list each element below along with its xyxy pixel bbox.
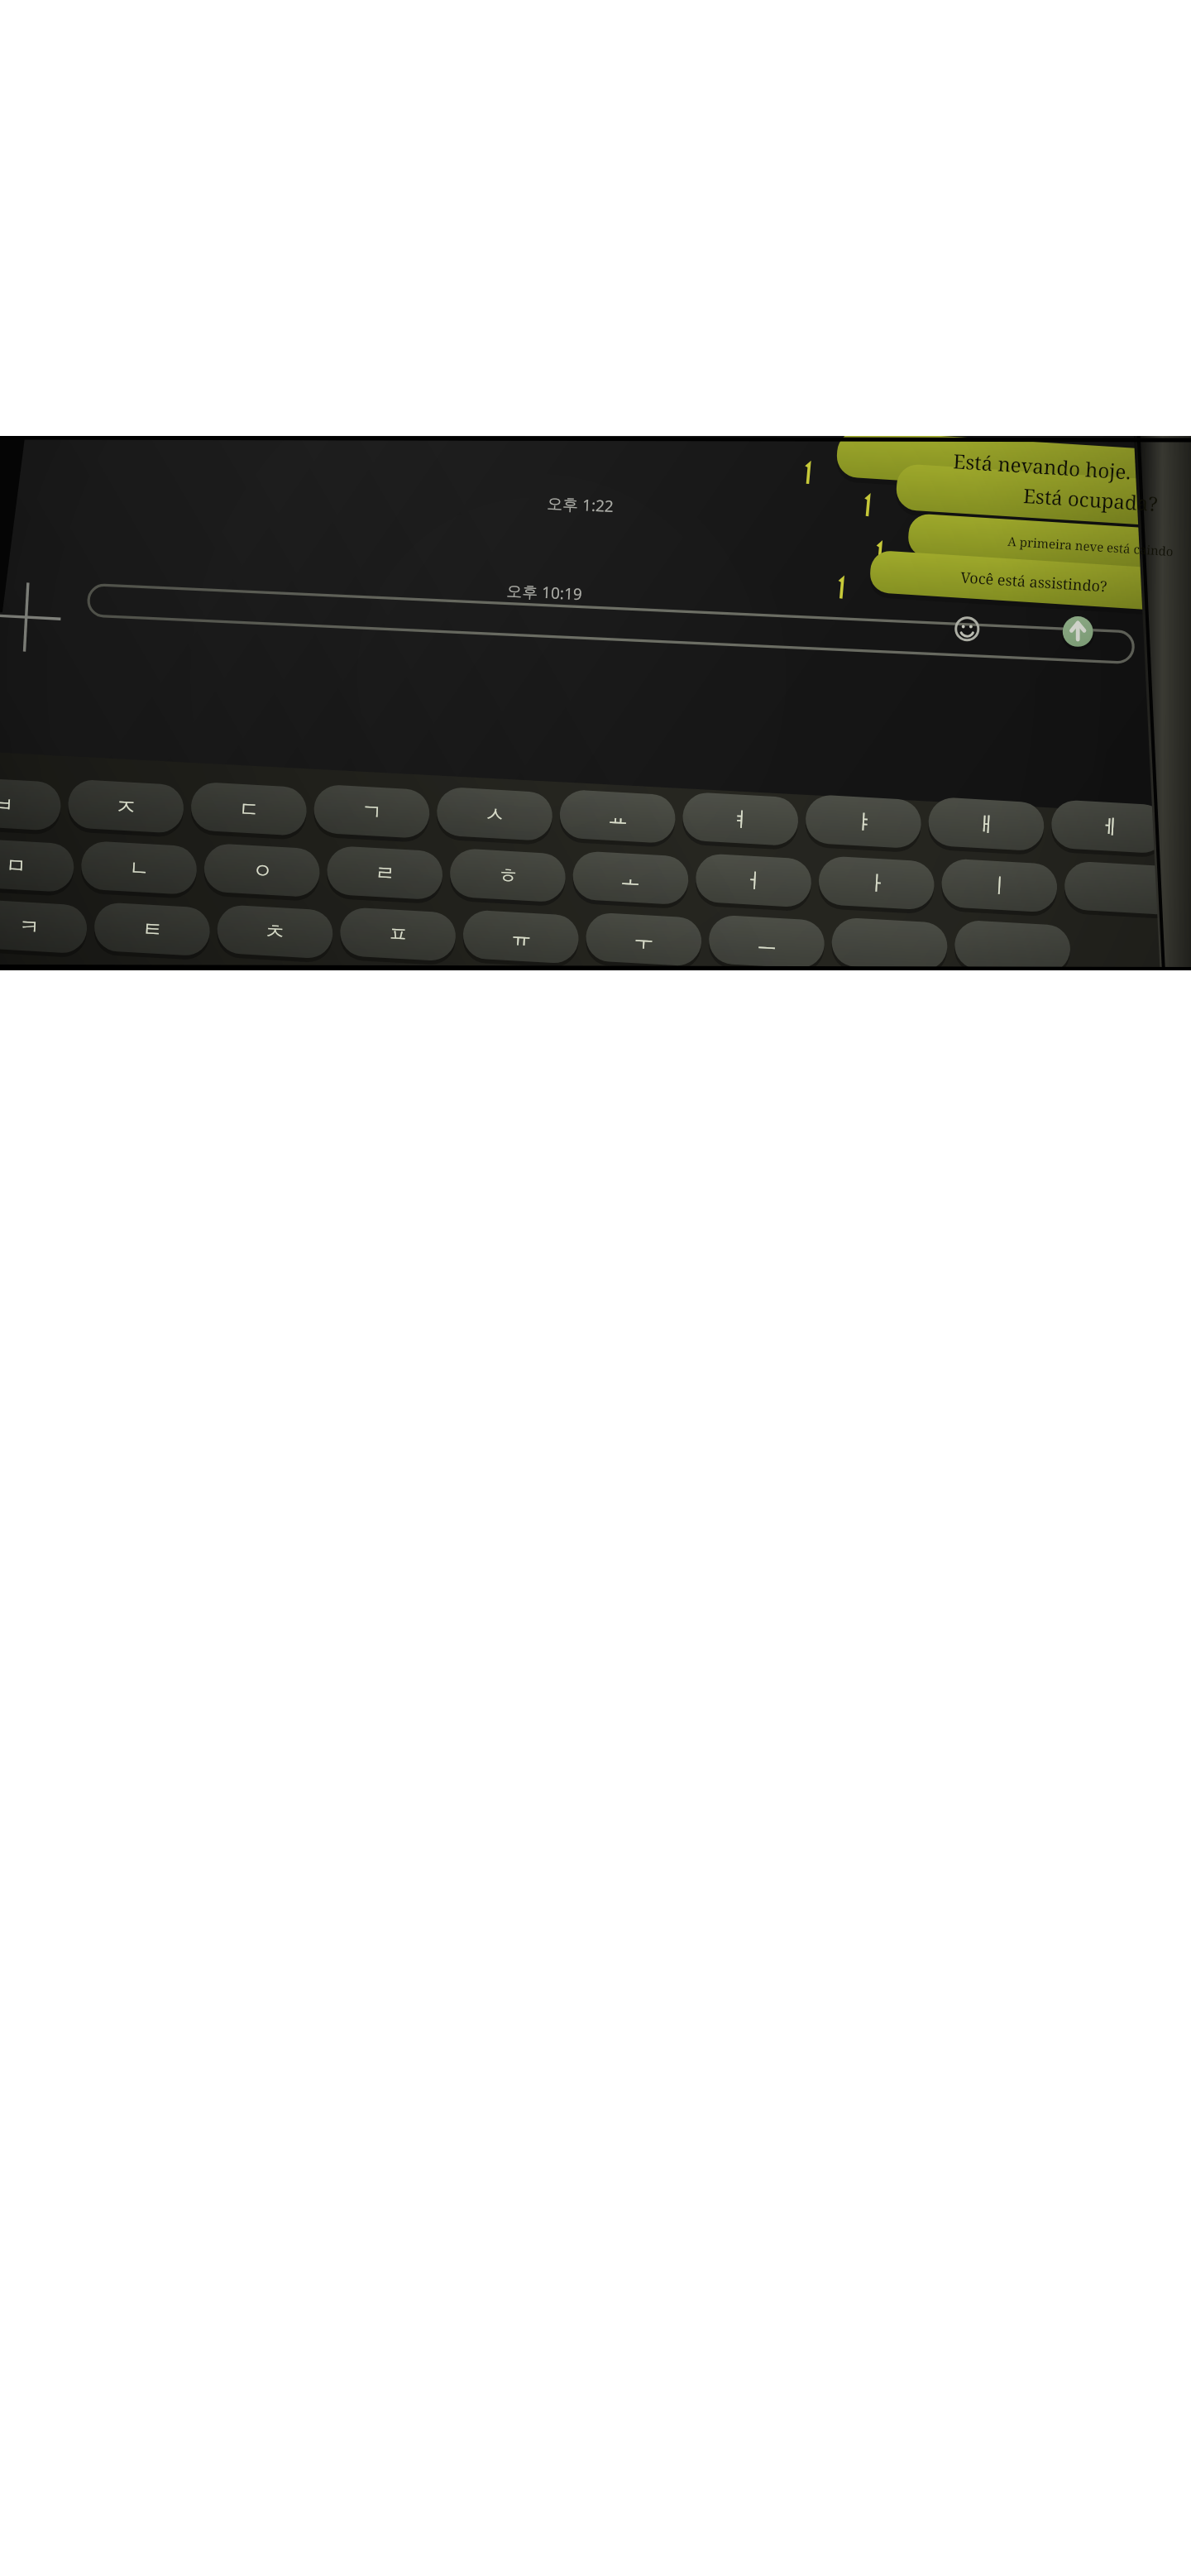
button[interactable] bbox=[870, 560, 1191, 602]
staticText: ㅔ bbox=[1098, 813, 1121, 840]
staticText: ㅠ bbox=[510, 924, 532, 950]
staticText: ㅁ bbox=[5, 852, 27, 879]
staticText: ㅕ bbox=[730, 806, 752, 833]
staticText: ㅋ bbox=[18, 914, 40, 940]
staticText: Está nevando hoje. bbox=[952, 447, 1132, 485]
staticText: ㄱ bbox=[361, 799, 383, 825]
button[interactable]: Send message bbox=[1031, 612, 1126, 648]
button[interactable] bbox=[897, 476, 1191, 522]
staticText: ㅍ bbox=[387, 921, 409, 948]
button[interactable]: Message input bbox=[88, 604, 911, 635]
button[interactable] bbox=[908, 524, 1191, 567]
button[interactable]: Attach bbox=[0, 601, 69, 635]
staticText: ㅌ bbox=[142, 916, 164, 943]
staticText: ㅅ bbox=[484, 801, 506, 828]
staticText: ㅏ bbox=[866, 870, 888, 896]
staticText: ㅂ bbox=[0, 791, 15, 818]
staticText: ㅓ bbox=[743, 867, 765, 894]
staticText: ㄷ bbox=[238, 796, 260, 823]
button[interactable] bbox=[837, 443, 1191, 490]
staticText: ㅗ bbox=[620, 865, 642, 892]
staticText: ㅡ bbox=[756, 929, 778, 956]
button[interactable]: Emoji bbox=[924, 615, 1010, 648]
staticText: ㅊ bbox=[264, 919, 286, 945]
staticText: ㅇ bbox=[252, 857, 274, 884]
staticText: ㅈ bbox=[115, 794, 137, 820]
staticText: ㅐ bbox=[975, 811, 997, 838]
staticText: ㅛ bbox=[607, 804, 629, 830]
staticText: 오후 1:22 bbox=[546, 492, 614, 517]
staticText: A primeira neve está caindo bbox=[1007, 532, 1174, 559]
staticText: ㄹ bbox=[374, 860, 396, 887]
staticText: ㅑ bbox=[853, 809, 875, 835]
staticText: 오후 10:19 bbox=[506, 580, 583, 605]
staticText: ㄴ bbox=[128, 855, 150, 882]
staticText: ㅜ bbox=[633, 927, 655, 954]
staticText: Está ocupada? bbox=[1022, 481, 1159, 517]
staticText: ㅣ bbox=[988, 872, 1011, 899]
staticText: Você está assistindo? bbox=[960, 567, 1108, 597]
staticText: ㅎ bbox=[497, 862, 519, 889]
